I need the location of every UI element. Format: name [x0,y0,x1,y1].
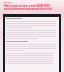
staticText: STEP 5 [4,1,12,4]
staticText: Nail your intro: your B2B/B2C [4,4,51,7]
staticText: positioning statement here ok [4,7,53,10]
